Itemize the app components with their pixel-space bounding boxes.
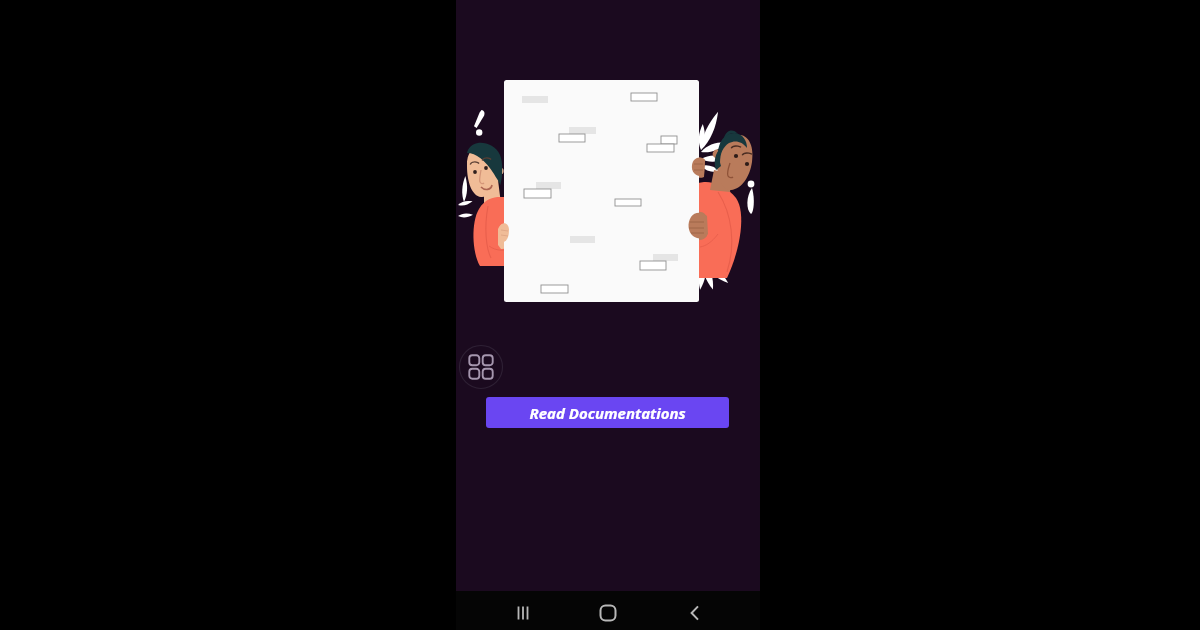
button[interactable]: Apps: [458, 344, 504, 390]
button[interactable]: Home: [588, 593, 628, 630]
button[interactable]: Read Documentations: [486, 397, 729, 428]
button[interactable]: Recents: [503, 593, 543, 630]
button[interactable]: Back: [674, 593, 714, 630]
staticText: Read Documentations: [529, 403, 686, 423]
